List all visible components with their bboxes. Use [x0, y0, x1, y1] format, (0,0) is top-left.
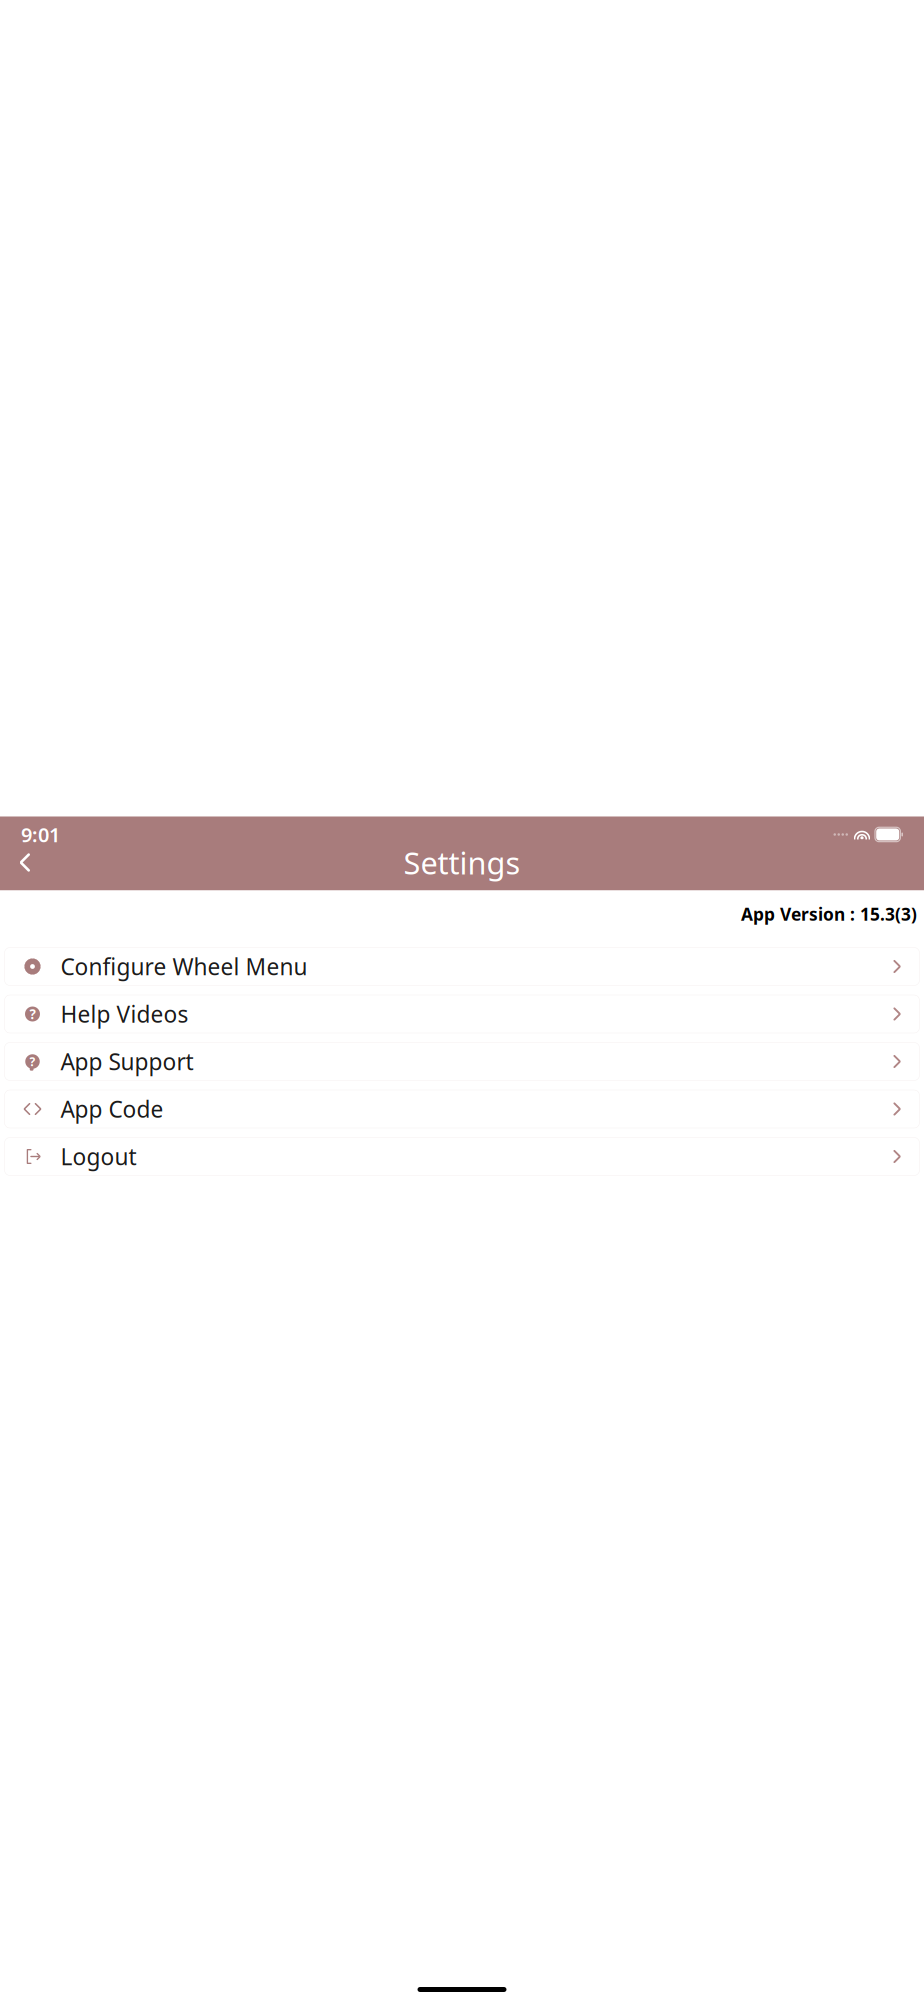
staticText: Help Videos	[60, 999, 188, 1029]
staticText: ?	[29, 1005, 35, 1023]
staticText: App Code	[60, 1094, 163, 1124]
button[interactable]: Configure Wheel Menu	[4, 947, 919, 985]
button[interactable]: App Code	[4, 1090, 919, 1128]
staticText: Settings	[403, 842, 520, 883]
button[interactable]: ?	[4, 995, 919, 1033]
staticText: ?	[29, 1053, 35, 1069]
staticText: 9:01	[21, 821, 60, 848]
staticText: Configure Wheel Menu	[60, 951, 307, 982]
button[interactable]: Logout	[4, 1137, 919, 1175]
staticText: App Support	[60, 1046, 193, 1077]
button[interactable]: Back	[8, 845, 42, 879]
button[interactable]: ?	[4, 1042, 919, 1080]
staticText: Logout	[60, 1141, 136, 1172]
staticText: App Version : 15.3(3)	[741, 902, 917, 925]
